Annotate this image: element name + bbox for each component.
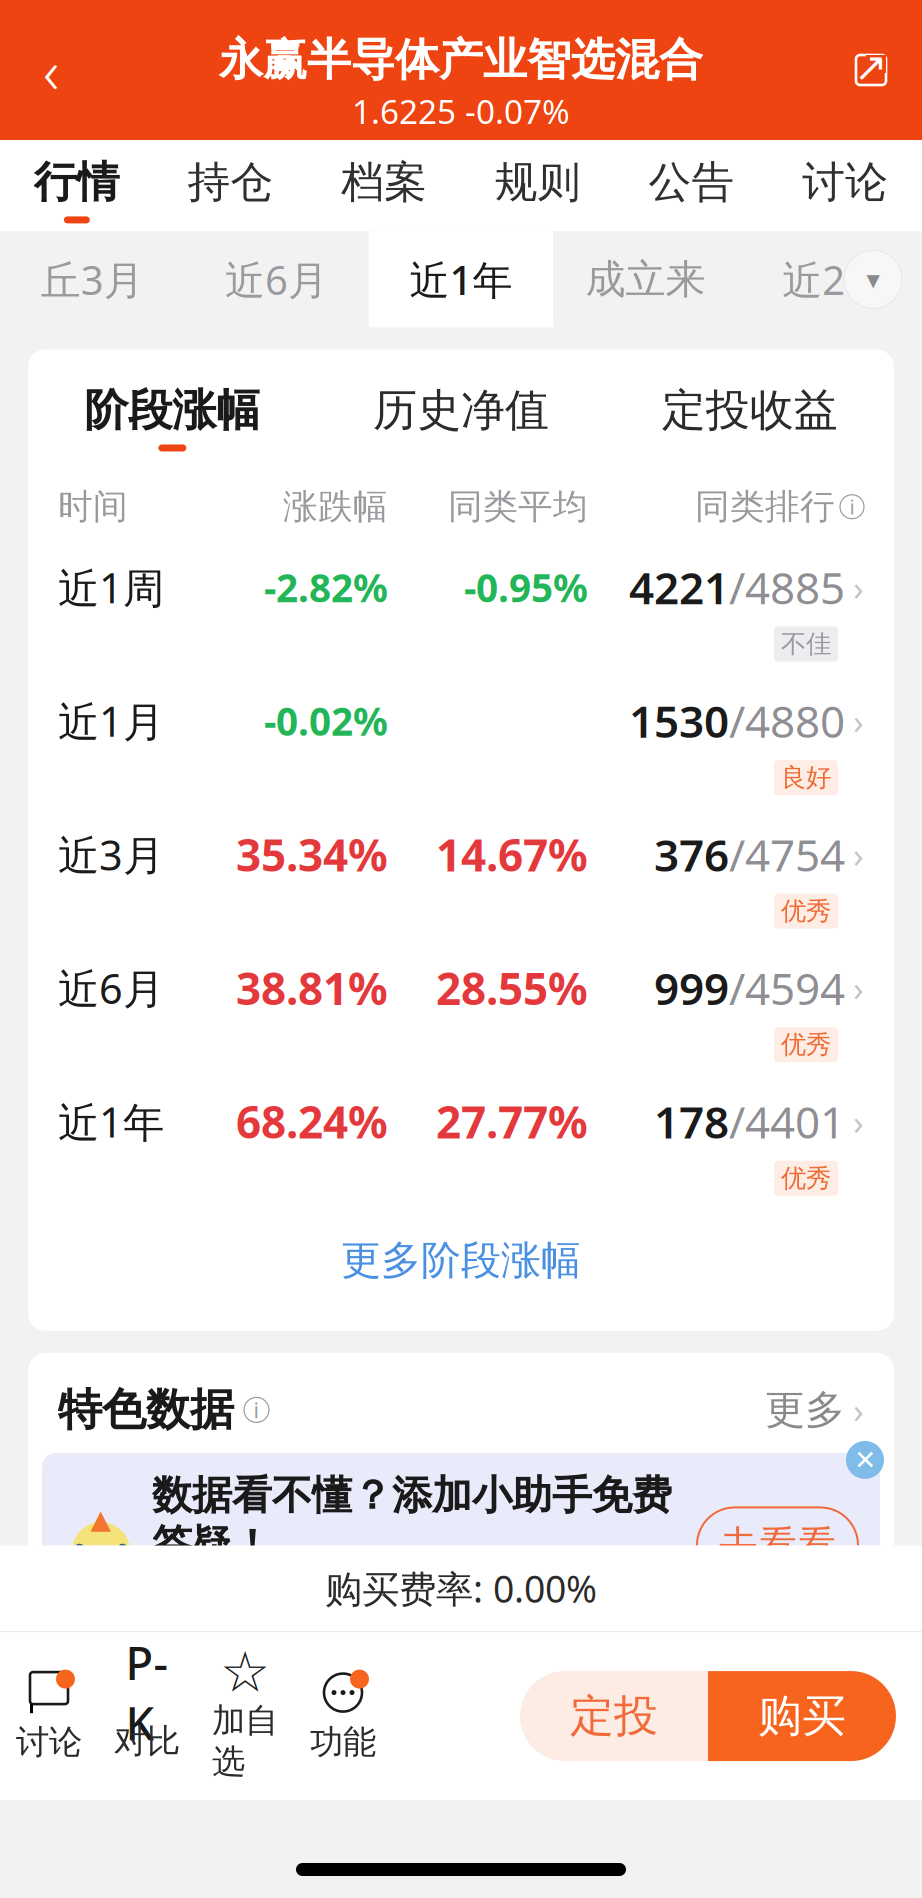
staticText: 时间 — [58, 485, 128, 528]
staticText: ↗ — [854, 44, 888, 90]
staticText: 近2… — [782, 253, 877, 306]
button[interactable]: More periods — [844, 250, 902, 308]
button[interactable]: 近1周 — [28, 528, 894, 661]
button[interactable]: 近1月 — [28, 662, 894, 795]
button[interactable]: 购买 — [708, 1671, 896, 1761]
staticText: -0.95% — [464, 562, 588, 613]
staticText: 成立来 — [585, 255, 705, 304]
staticText: -0.02% — [264, 695, 388, 746]
button[interactable]: 历史净值 — [317, 383, 605, 451]
staticText: 近6月 — [58, 960, 164, 1015]
button[interactable]: 更多 — [765, 1385, 864, 1434]
button[interactable]: 去看看 — [697, 1507, 858, 1583]
staticText: 购买费率: 0.00% — [325, 1563, 597, 1613]
staticText: 优秀 — [781, 896, 831, 927]
staticText: i — [849, 493, 854, 520]
staticText: 有问题随时问，数据用法马上会 — [152, 1575, 656, 1619]
button[interactable]: 丘3月 — [0, 231, 184, 327]
staticText: 对比 — [114, 1721, 180, 1761]
staticText: 行情 — [34, 156, 120, 208]
button[interactable]: Back — [14, 33, 88, 107]
staticText: 讨论 — [16, 1722, 82, 1762]
button[interactable]: 近2… — [738, 231, 922, 327]
button[interactable]: Close promotion — [846, 1441, 884, 1479]
button[interactable]: 更多阶段涨幅 — [28, 1196, 894, 1325]
staticText: 376 — [654, 825, 729, 883]
staticText: ✕ — [854, 1445, 876, 1475]
staticText: 近1周 — [58, 560, 164, 615]
staticText: 去看看 — [719, 1521, 836, 1569]
staticText: ‹ — [43, 29, 59, 111]
staticText: 178 — [654, 1092, 729, 1151]
staticText: 公告 — [648, 156, 734, 208]
button[interactable]: 规则 — [461, 140, 615, 231]
staticText: 历史净值 — [373, 383, 549, 437]
staticText: 28.55% — [436, 959, 588, 1017]
staticText: 1.6225 -0.07% — [352, 89, 570, 133]
staticText: 27.77% — [436, 1092, 588, 1151]
staticText: › — [853, 1098, 864, 1144]
button[interactable]: 近3月 — [28, 795, 894, 929]
staticText: PK — [125, 1632, 168, 1753]
staticText: 999 — [654, 959, 729, 1017]
staticText: 优秀 — [781, 1029, 831, 1060]
staticText: 1530 — [629, 692, 729, 750]
staticText: 近1年 — [58, 1094, 164, 1149]
staticText: › — [853, 965, 864, 1011]
button[interactable]: PK — [98, 1661, 196, 1771]
staticText: 38.81% — [236, 959, 388, 1017]
staticText: 近6月 — [225, 253, 328, 306]
staticText: › — [853, 1387, 864, 1433]
button[interactable]: 讨论 — [0, 1660, 98, 1772]
button[interactable]: 近1年 — [28, 1062, 894, 1196]
button[interactable]: 定投 — [520, 1671, 708, 1761]
staticText: 35.34% — [236, 825, 388, 883]
staticText: 丘3月 — [41, 253, 144, 306]
staticText: 同类平均 — [448, 485, 588, 528]
staticText: 阶段涨幅 — [84, 383, 260, 437]
staticText: i — [253, 1396, 259, 1424]
staticText: 加自选 — [212, 1700, 278, 1782]
staticText: 档案 — [341, 156, 427, 208]
button[interactable]: 公告 — [615, 140, 768, 231]
button[interactable]: ☆ — [196, 1640, 294, 1792]
button[interactable]: Share — [834, 33, 908, 107]
staticText: 4221 — [629, 558, 729, 616]
staticText: 68.24% — [236, 1092, 388, 1151]
button[interactable]: 成立来 — [553, 231, 738, 327]
button[interactable]: 近6月 — [184, 231, 369, 327]
staticText: 更多阶段涨幅 — [341, 1236, 581, 1285]
button[interactable]: 持仓 — [154, 140, 307, 231]
button[interactable]: 讨论 — [768, 140, 922, 231]
staticText: 近3月 — [58, 827, 164, 882]
button[interactable]: 近6月 — [28, 929, 894, 1062]
staticText: /4754 — [729, 825, 845, 883]
staticText: 功能 — [310, 1722, 376, 1762]
staticText: 定投 — [570, 1689, 658, 1743]
staticText: 规则 — [495, 156, 581, 208]
staticText: › — [853, 698, 864, 744]
staticText: 持仓 — [187, 156, 273, 208]
staticText: 良好 — [781, 762, 831, 793]
staticText: 更多 — [765, 1385, 845, 1434]
button[interactable]: 定投收益 — [605, 383, 894, 451]
staticText: 特色数据 — [58, 1383, 234, 1437]
staticText: -2.82% — [264, 562, 388, 613]
button[interactable]: 行情 — [0, 140, 154, 231]
button[interactable]: 近1年 — [369, 231, 553, 327]
staticText: /4401 — [729, 1092, 845, 1151]
staticText: ▾ — [866, 264, 879, 295]
staticText: 永赢半导体产业智选混合 — [219, 33, 703, 87]
button[interactable]: 阶段涨幅 — [28, 383, 317, 451]
button[interactable]: 档案 — [307, 140, 461, 231]
staticText: 同类排行 — [695, 485, 835, 528]
staticText: 14.67% — [436, 825, 588, 883]
staticText: /4880 — [729, 692, 845, 750]
staticText: 数据看不懂？添加小助手免费答疑！ — [152, 1471, 672, 1569]
staticText: 近1月 — [58, 693, 164, 748]
staticText: 不佳 — [781, 628, 831, 660]
button[interactable]: 功能 — [294, 1660, 392, 1772]
staticText: /4885 — [729, 558, 845, 616]
staticText: 近1年 — [409, 253, 512, 306]
